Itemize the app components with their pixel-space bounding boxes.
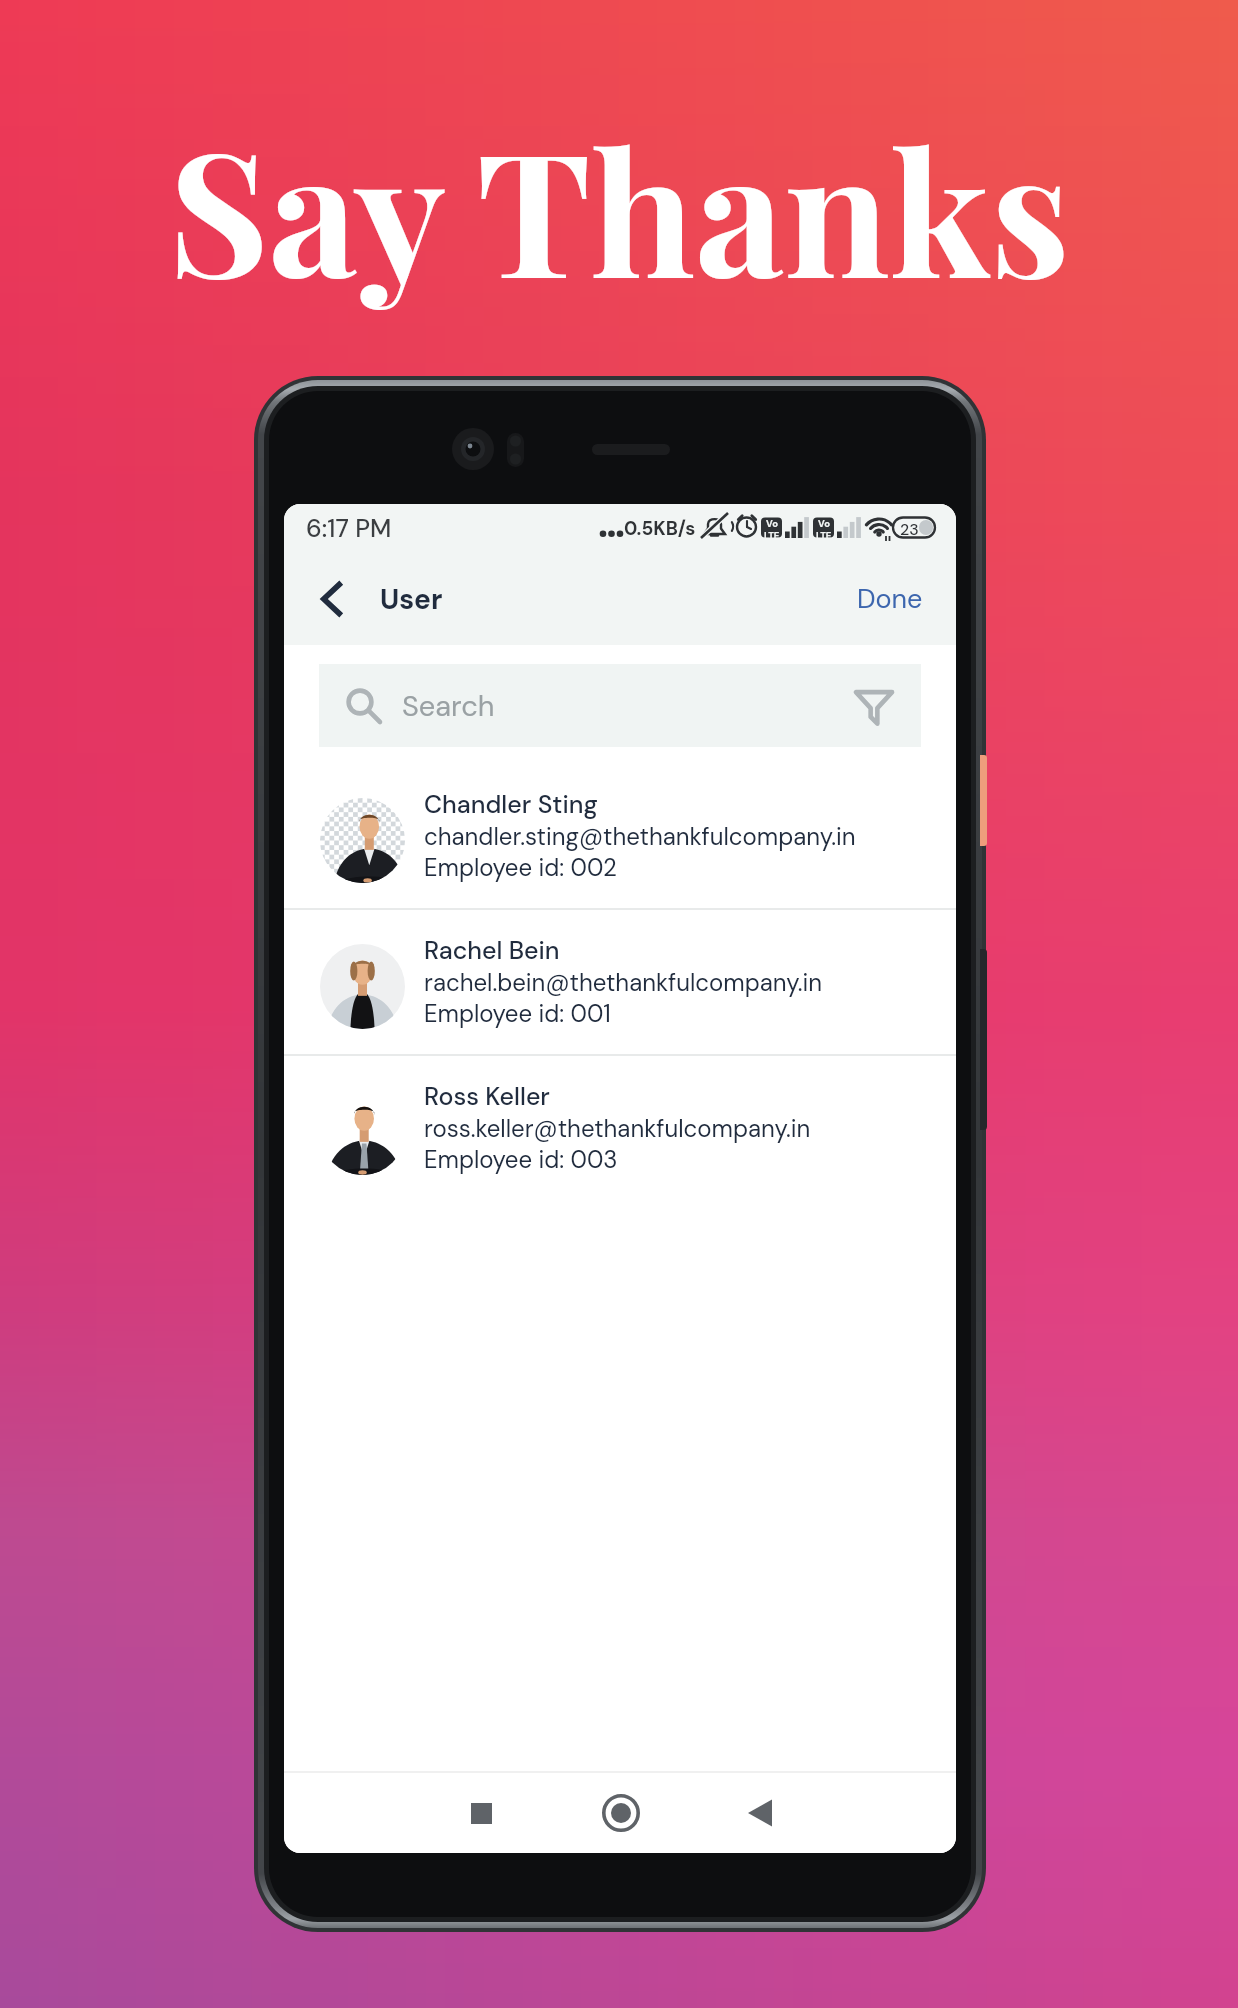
staticText: Ross Keller	[424, 1080, 550, 1113]
staticText: Done	[857, 581, 923, 616]
staticText: Chandler Sting	[424, 788, 598, 821]
staticText: 6:17 PM	[306, 512, 392, 545]
button[interactable]: Home	[551, 1773, 690, 1853]
button[interactable]: Done	[827, 552, 956, 645]
button[interactable]: Filter	[853, 685, 895, 727]
staticText: Employee id: 002	[424, 852, 617, 883]
staticText: Search	[402, 687, 495, 725]
staticText: ross.keller@thethankfulcompany.in	[424, 1113, 811, 1144]
staticText: Rachel Bein	[424, 934, 560, 967]
staticText: rachel.bein@thethankfulcompany.in	[424, 967, 823, 998]
staticText: Employee id: 003	[424, 1144, 618, 1175]
staticText: Say Thanks	[168, 92, 1070, 311]
button[interactable]: Back	[690, 1773, 829, 1853]
button[interactable]: Recent apps	[412, 1773, 551, 1853]
staticText: LTE	[764, 530, 780, 538]
button[interactable]: Ross Keller	[284, 1056, 956, 1200]
button[interactable]: Back	[284, 552, 380, 645]
staticText: Employee id: 001	[424, 998, 611, 1029]
button[interactable]: Chandler Sting	[284, 764, 956, 908]
staticText: 0.5KB/s	[624, 516, 696, 541]
staticText: LTE	[816, 530, 832, 538]
staticText: Vo	[766, 518, 778, 530]
staticText: Vo	[818, 518, 830, 530]
staticText: 23	[900, 519, 919, 540]
staticText: User	[380, 581, 443, 617]
staticText: chandler.sting@thethankfulcompany.in	[424, 821, 856, 852]
button[interactable]: Rachel Bein	[284, 910, 956, 1054]
button[interactable]: Search	[319, 664, 921, 747]
